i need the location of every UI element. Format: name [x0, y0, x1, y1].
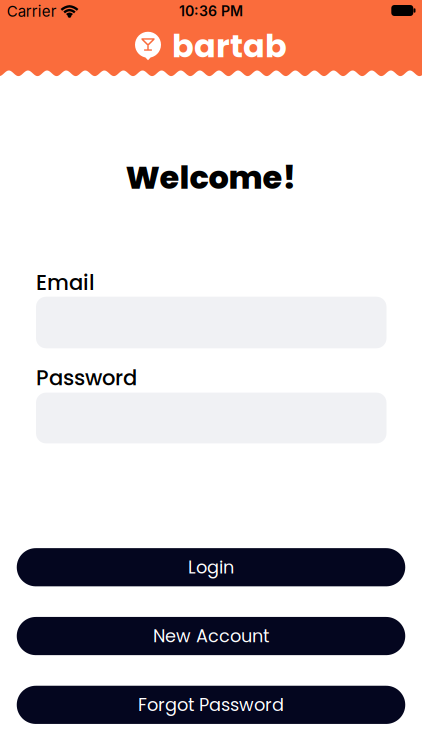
button[interactable]: Forgot Password	[17, 686, 405, 724]
staticText: Password	[36, 363, 137, 393]
button[interactable]: Login	[17, 548, 405, 586]
staticText: 10:36 PM	[179, 3, 243, 20]
staticText: Login	[188, 555, 234, 580]
button[interactable]: New Account	[17, 617, 405, 655]
staticText: Email	[36, 268, 95, 297]
staticText: Welcome!	[125, 155, 296, 200]
staticText: New Account	[153, 624, 269, 648]
staticText: Forgot Password	[138, 692, 284, 717]
staticText: Carrier	[7, 2, 57, 20]
staticText: bartab	[172, 24, 287, 68]
